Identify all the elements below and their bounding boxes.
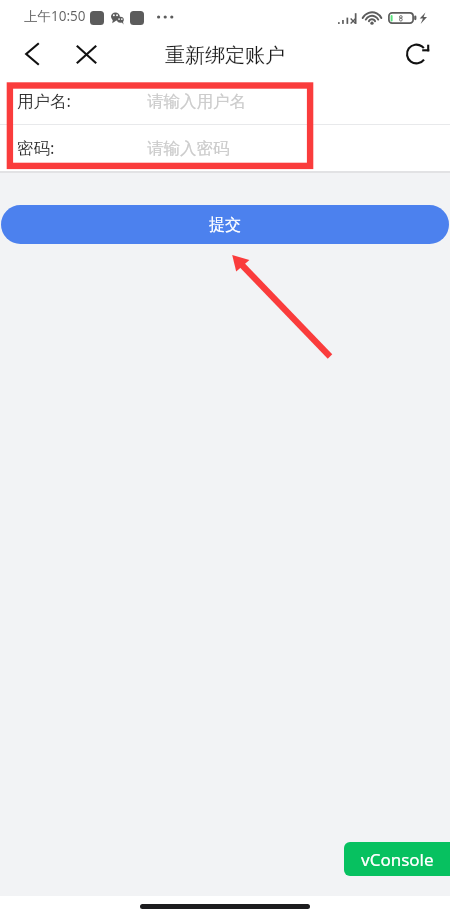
button[interactable]: Refresh (400, 37, 436, 73)
button[interactable]: Close (68, 37, 104, 73)
button[interactable]: 密码: (0, 125, 450, 171)
staticText: 用户名: (17, 89, 71, 112)
staticText: 密码: (17, 136, 55, 159)
button[interactable]: 提交 (1, 205, 449, 244)
staticText: 请输入用户名 (147, 91, 246, 112)
staticText: 提交 (209, 215, 241, 235)
staticText: 请输入密码 (147, 138, 230, 159)
button[interactable]: Back (14, 37, 50, 73)
staticText: 重新绑定账户 (165, 43, 285, 68)
staticText: 上午10:50 (24, 7, 86, 25)
staticText: vConsole (361, 848, 434, 871)
button[interactable]: vConsole (344, 842, 450, 876)
button[interactable]: 用户名: (0, 78, 450, 124)
